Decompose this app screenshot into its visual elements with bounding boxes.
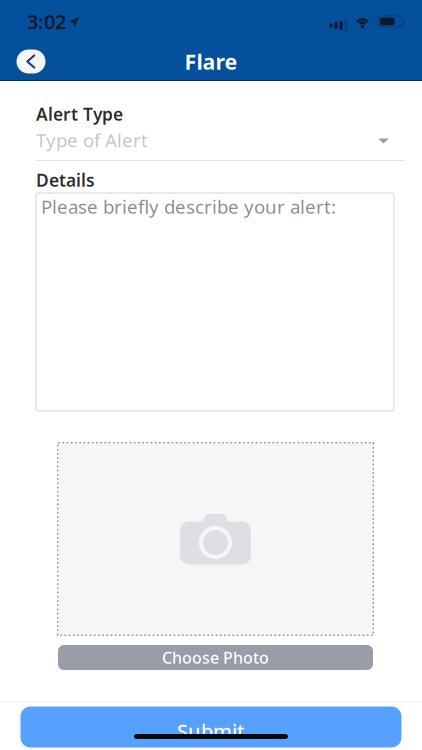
button[interactable]: Back [7,42,55,80]
staticText: Submit [177,718,245,744]
button[interactable]: Type of Alert [36,129,405,161]
staticText: Please briefly describe your alert: [41,194,336,219]
staticText: Flare [184,47,237,76]
staticText: Details [36,168,95,191]
staticText: Choose Photo [162,647,269,668]
staticText: Type of Alert [36,128,148,152]
button[interactable]: Submit [20,706,401,747]
staticText: 3:02 [27,8,66,35]
button[interactable]: Choose Photo [58,645,373,670]
staticText: Alert Type [36,102,123,125]
